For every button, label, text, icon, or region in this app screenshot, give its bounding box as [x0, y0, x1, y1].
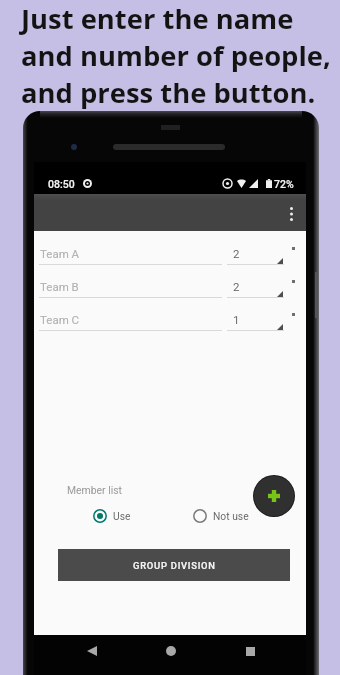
- staticText: 2: [233, 247, 240, 260]
- staticText: Team A: [40, 247, 80, 260]
- staticText: 08:50: [48, 178, 75, 190]
- button[interactable]: Not use: [193, 509, 249, 523]
- staticText: Not use: [213, 510, 249, 522]
- staticText: 72%: [274, 178, 294, 190]
- button[interactable]: Add: [254, 476, 294, 516]
- staticText: and press the button.: [21, 74, 316, 111]
- staticText: Team B: [40, 280, 79, 293]
- button[interactable]: More options: [278, 201, 304, 227]
- staticText: GROUP DIVISION: [133, 560, 216, 571]
- button[interactable]: Home: [158, 638, 184, 664]
- button[interactable]: GROUP DIVISION: [58, 549, 290, 581]
- button[interactable]: Back: [79, 638, 105, 664]
- button[interactable]: Recents: [237, 638, 263, 664]
- staticText: Team C: [40, 313, 80, 326]
- staticText: 1: [233, 313, 240, 326]
- staticText: Member list: [67, 484, 122, 496]
- staticText: and number of people,: [21, 37, 331, 74]
- staticText: Use: [113, 510, 131, 522]
- staticText: 2: [233, 280, 240, 293]
- staticText: Just enter the name: [21, 0, 294, 37]
- button[interactable]: Use: [93, 509, 131, 523]
